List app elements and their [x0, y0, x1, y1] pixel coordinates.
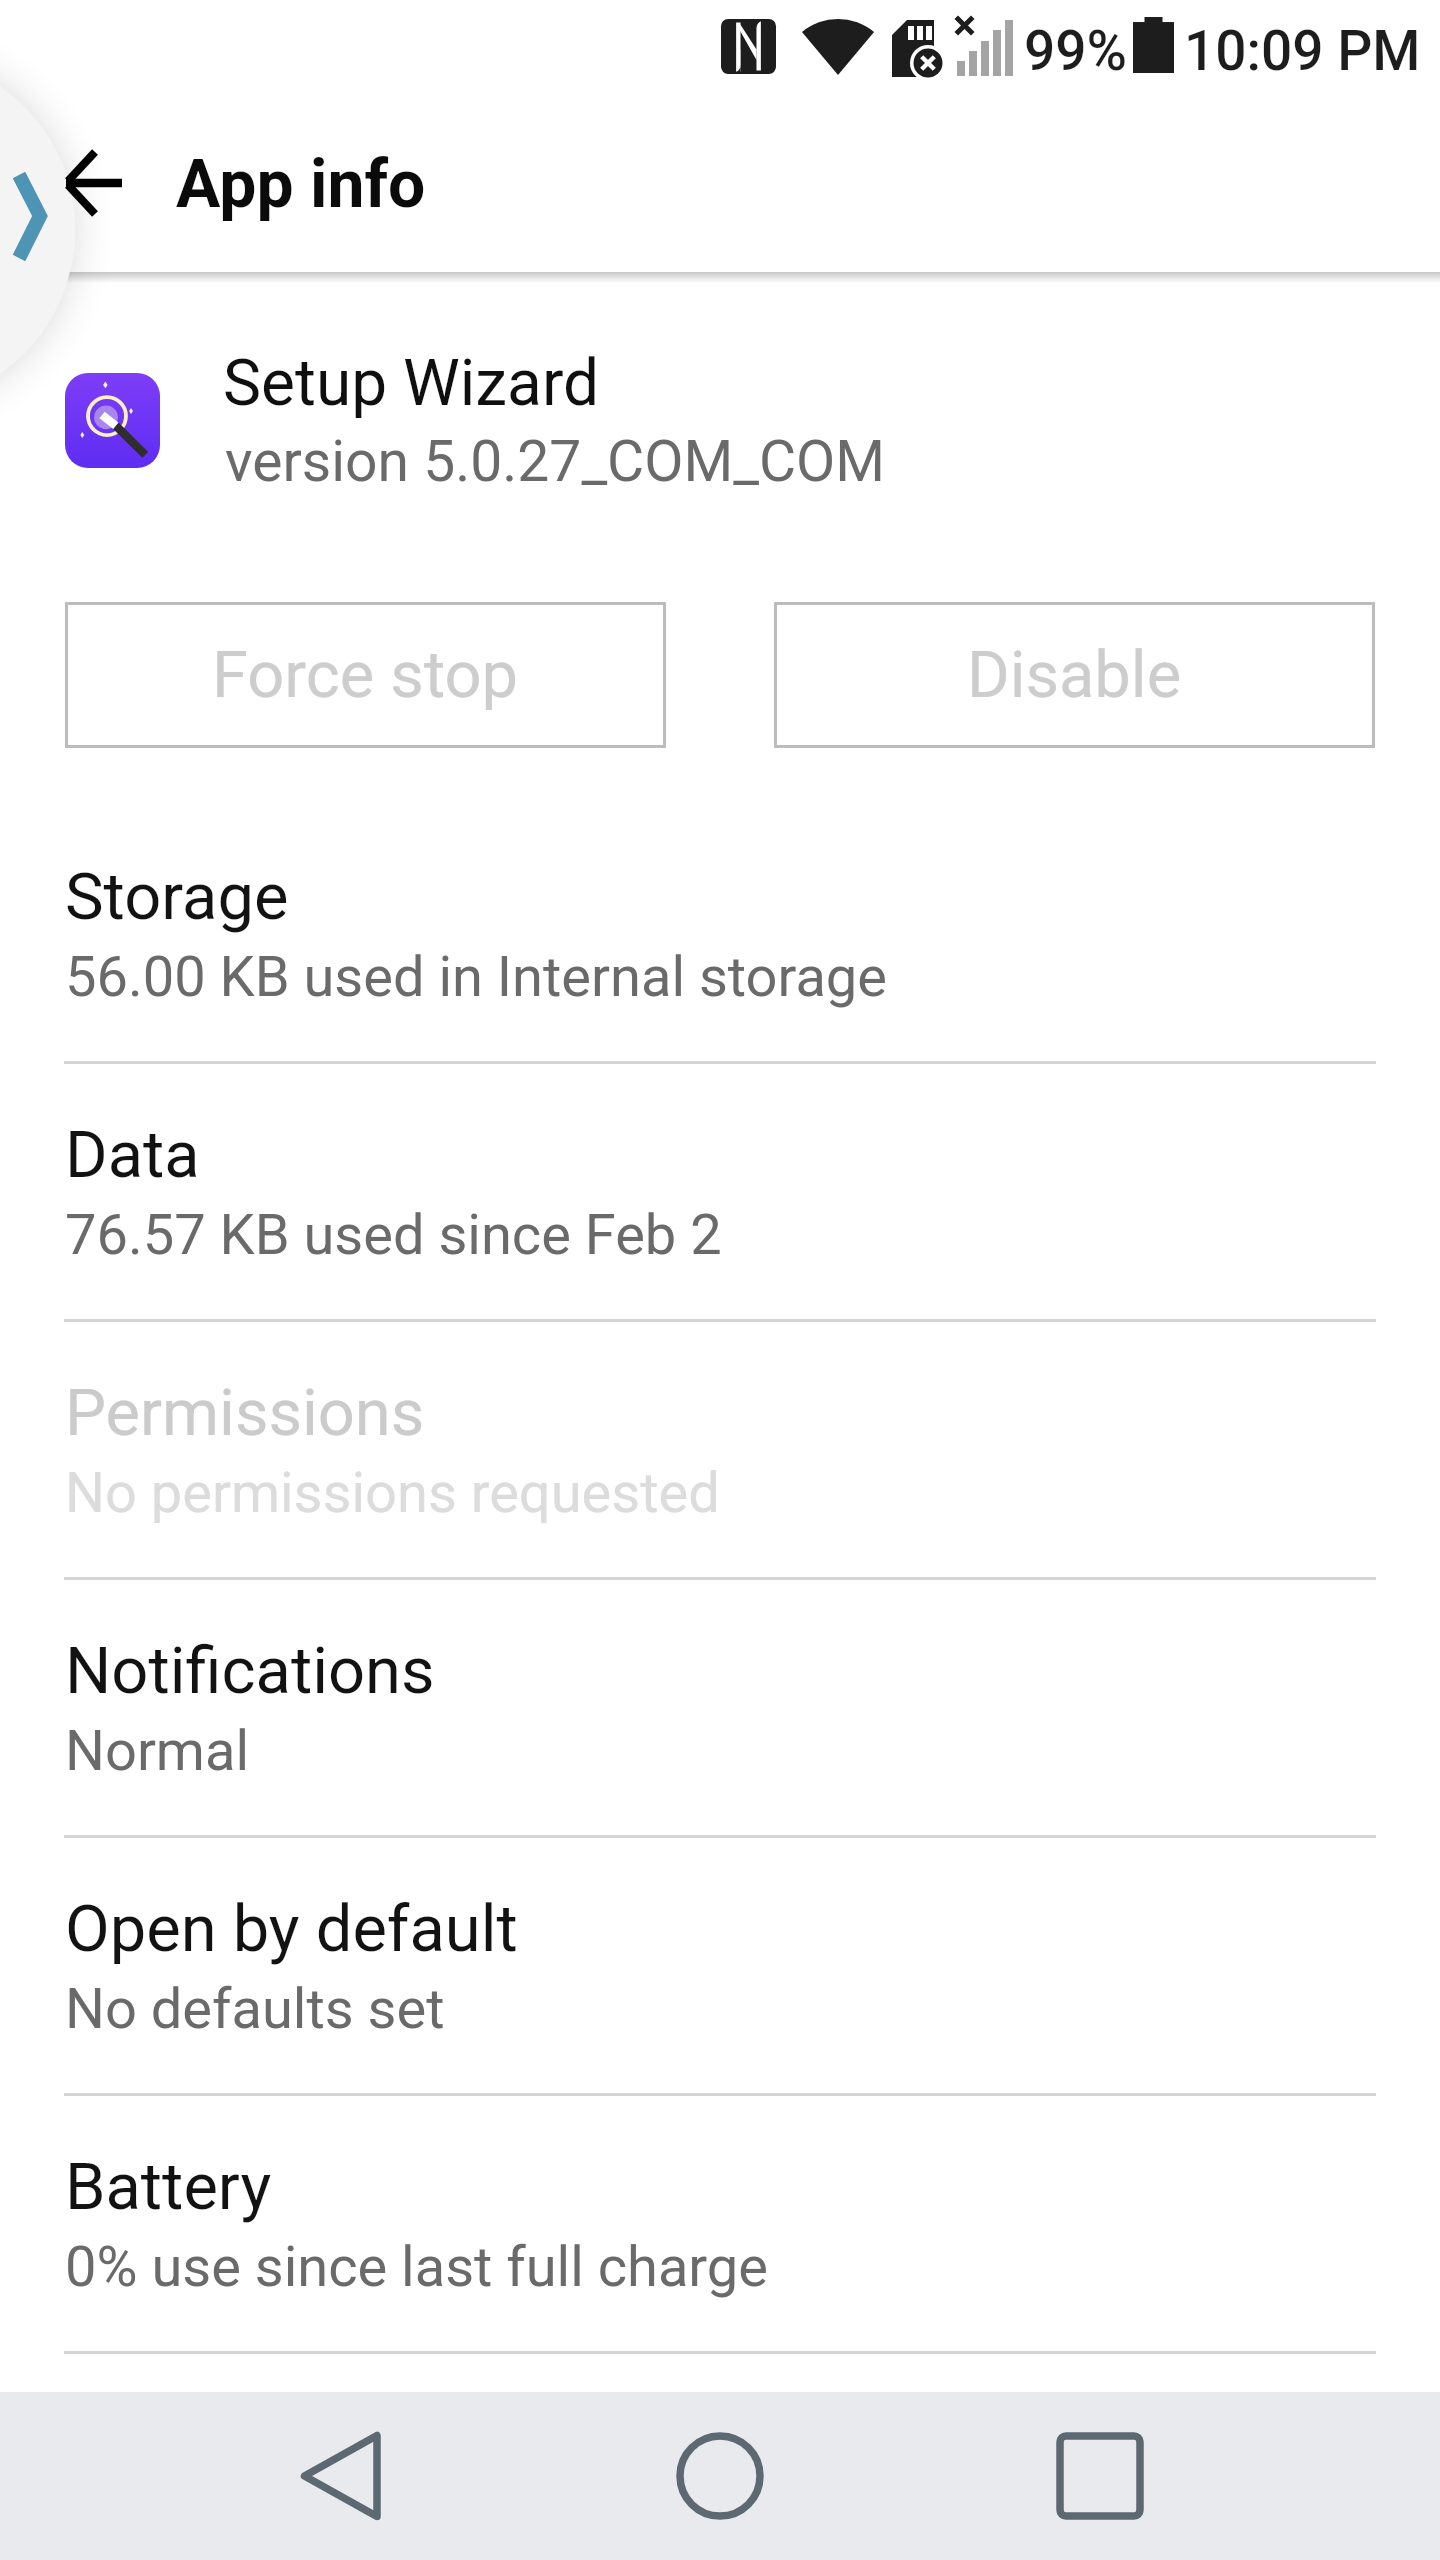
- button[interactable]: Recent apps: [1016, 2392, 1184, 2560]
- staticText: Disable: [967, 637, 1182, 713]
- staticText: Battery: [65, 2149, 272, 2225]
- button[interactable]: Storage: [0, 859, 1440, 1117]
- staticText: 99%: [1024, 19, 1128, 83]
- staticText: Open by default: [65, 1891, 518, 1967]
- button[interactable]: Back: [41, 123, 161, 243]
- staticText: No defaults set: [65, 1976, 445, 2042]
- staticText: App info: [176, 146, 426, 223]
- button[interactable]: Open by default: [0, 1891, 1440, 2149]
- button[interactable]: Back: [256, 2392, 424, 2560]
- staticText: 0% use since last full charge: [65, 2234, 768, 2300]
- staticText: Permissions: [65, 1375, 425, 1451]
- button[interactable]: Notifications: [0, 1633, 1440, 1891]
- staticText: 56.00 KB used in Internal storage: [65, 944, 887, 1010]
- staticText: Storage: [65, 859, 289, 935]
- staticText: Normal: [65, 1718, 250, 1784]
- staticText: Force stop: [212, 637, 519, 713]
- staticText: 76.57 KB used since Feb 2: [65, 1202, 722, 1268]
- button[interactable]: Home: [636, 2392, 804, 2560]
- staticText: 10:09 PM: [1184, 19, 1421, 83]
- staticText: No permissions requested: [65, 1460, 720, 1526]
- staticText: Setup Wizard: [223, 346, 600, 421]
- staticText: Notifications: [65, 1633, 435, 1709]
- staticText: version 5.0.27_COM_COM: [225, 428, 885, 495]
- button[interactable]: Force stop: [65, 602, 666, 748]
- staticText: Data: [65, 1117, 200, 1193]
- button[interactable]: Assistive menu: [0, 55, 75, 405]
- button[interactable]: Disable: [774, 602, 1375, 748]
- button[interactable]: Battery: [0, 2149, 1440, 2407]
- button[interactable]: Permissions: [0, 1375, 1440, 1633]
- button[interactable]: Data: [0, 1117, 1440, 1375]
